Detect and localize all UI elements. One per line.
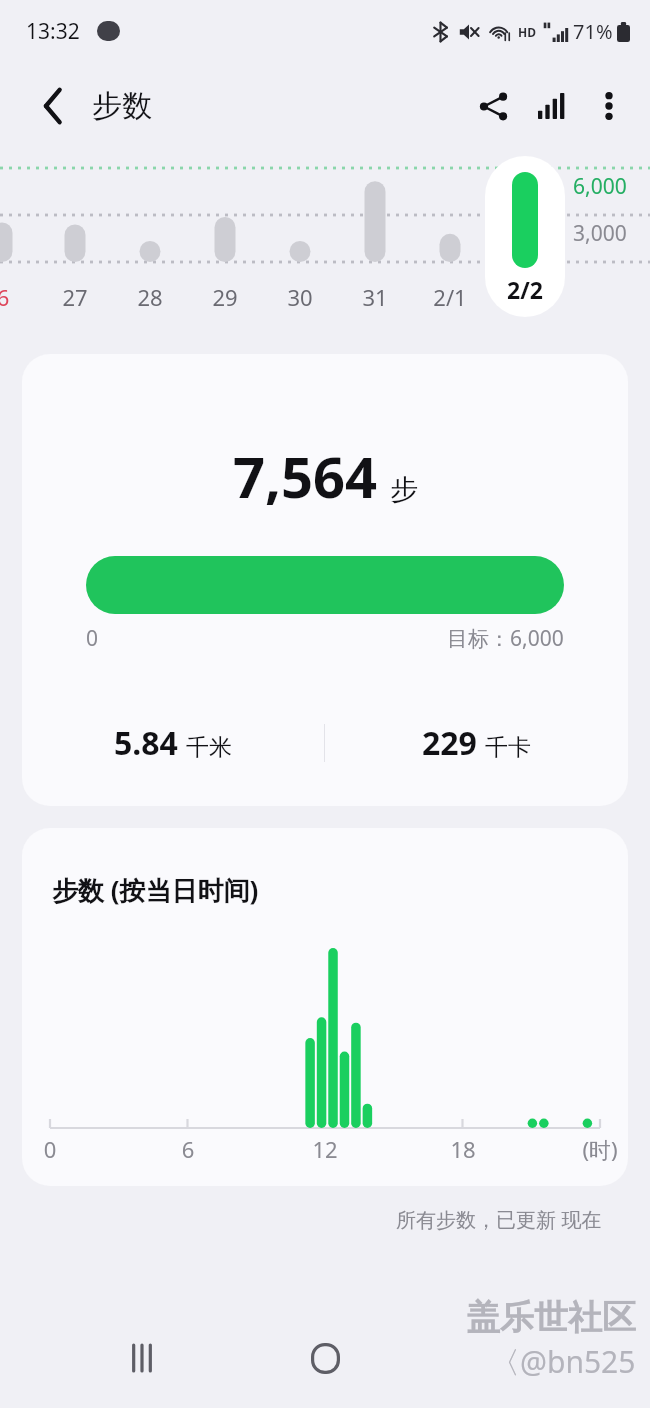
staticText: 13:32 [26, 17, 80, 46]
button[interactable]: Recents [114, 1330, 170, 1386]
staticText: 0 [22, 1134, 84, 1164]
staticText: HD [518, 24, 536, 40]
staticText: 6 [0, 282, 33, 312]
button[interactable]: Chart view [522, 77, 580, 135]
staticText: 2/1 [420, 282, 480, 312]
staticText: 步数 (按当日时间) [52, 872, 259, 908]
staticText: 所有步数，已更新 现在 [396, 1206, 602, 1233]
staticText: 12 [291, 1134, 359, 1164]
button[interactable]: Share [464, 77, 522, 135]
staticText: 31 [345, 282, 405, 312]
button[interactable]: 7,564 [22, 354, 628, 806]
staticText: 18 [429, 1134, 497, 1164]
staticText: 6 [154, 1134, 222, 1164]
staticText: 千卡 [485, 733, 531, 762]
staticText: 6,000 [573, 172, 627, 201]
button[interactable]: 2/2 [485, 156, 565, 317]
staticText: 29 [195, 282, 255, 312]
button[interactable]: Home [297, 1330, 353, 1386]
staticText: 千米 [186, 733, 232, 762]
button[interactable]: Back [28, 81, 78, 131]
staticText: 盖乐世社区 [466, 1296, 636, 1339]
staticText: 步 [390, 472, 418, 507]
staticText: 5.84 [114, 721, 178, 765]
staticText: 27 [45, 282, 105, 312]
staticText: 0 [86, 624, 99, 653]
staticText: 30 [270, 282, 330, 312]
staticText: 2/2 [507, 274, 543, 305]
staticText: 229 [422, 721, 477, 765]
button[interactable]: 步数 (按当日时间) [22, 828, 628, 1186]
staticText: 7,564 [233, 438, 378, 514]
staticText: (时) [566, 1134, 628, 1164]
button[interactable]: More options [580, 77, 638, 135]
staticText: 3,000 [573, 219, 627, 248]
staticText: 28 [120, 282, 180, 312]
staticText: 71% [573, 18, 613, 45]
staticText: 步数 [92, 87, 152, 125]
staticText: 目标：6,000 [447, 624, 564, 653]
staticText: 〈@bn525 [490, 1341, 636, 1382]
